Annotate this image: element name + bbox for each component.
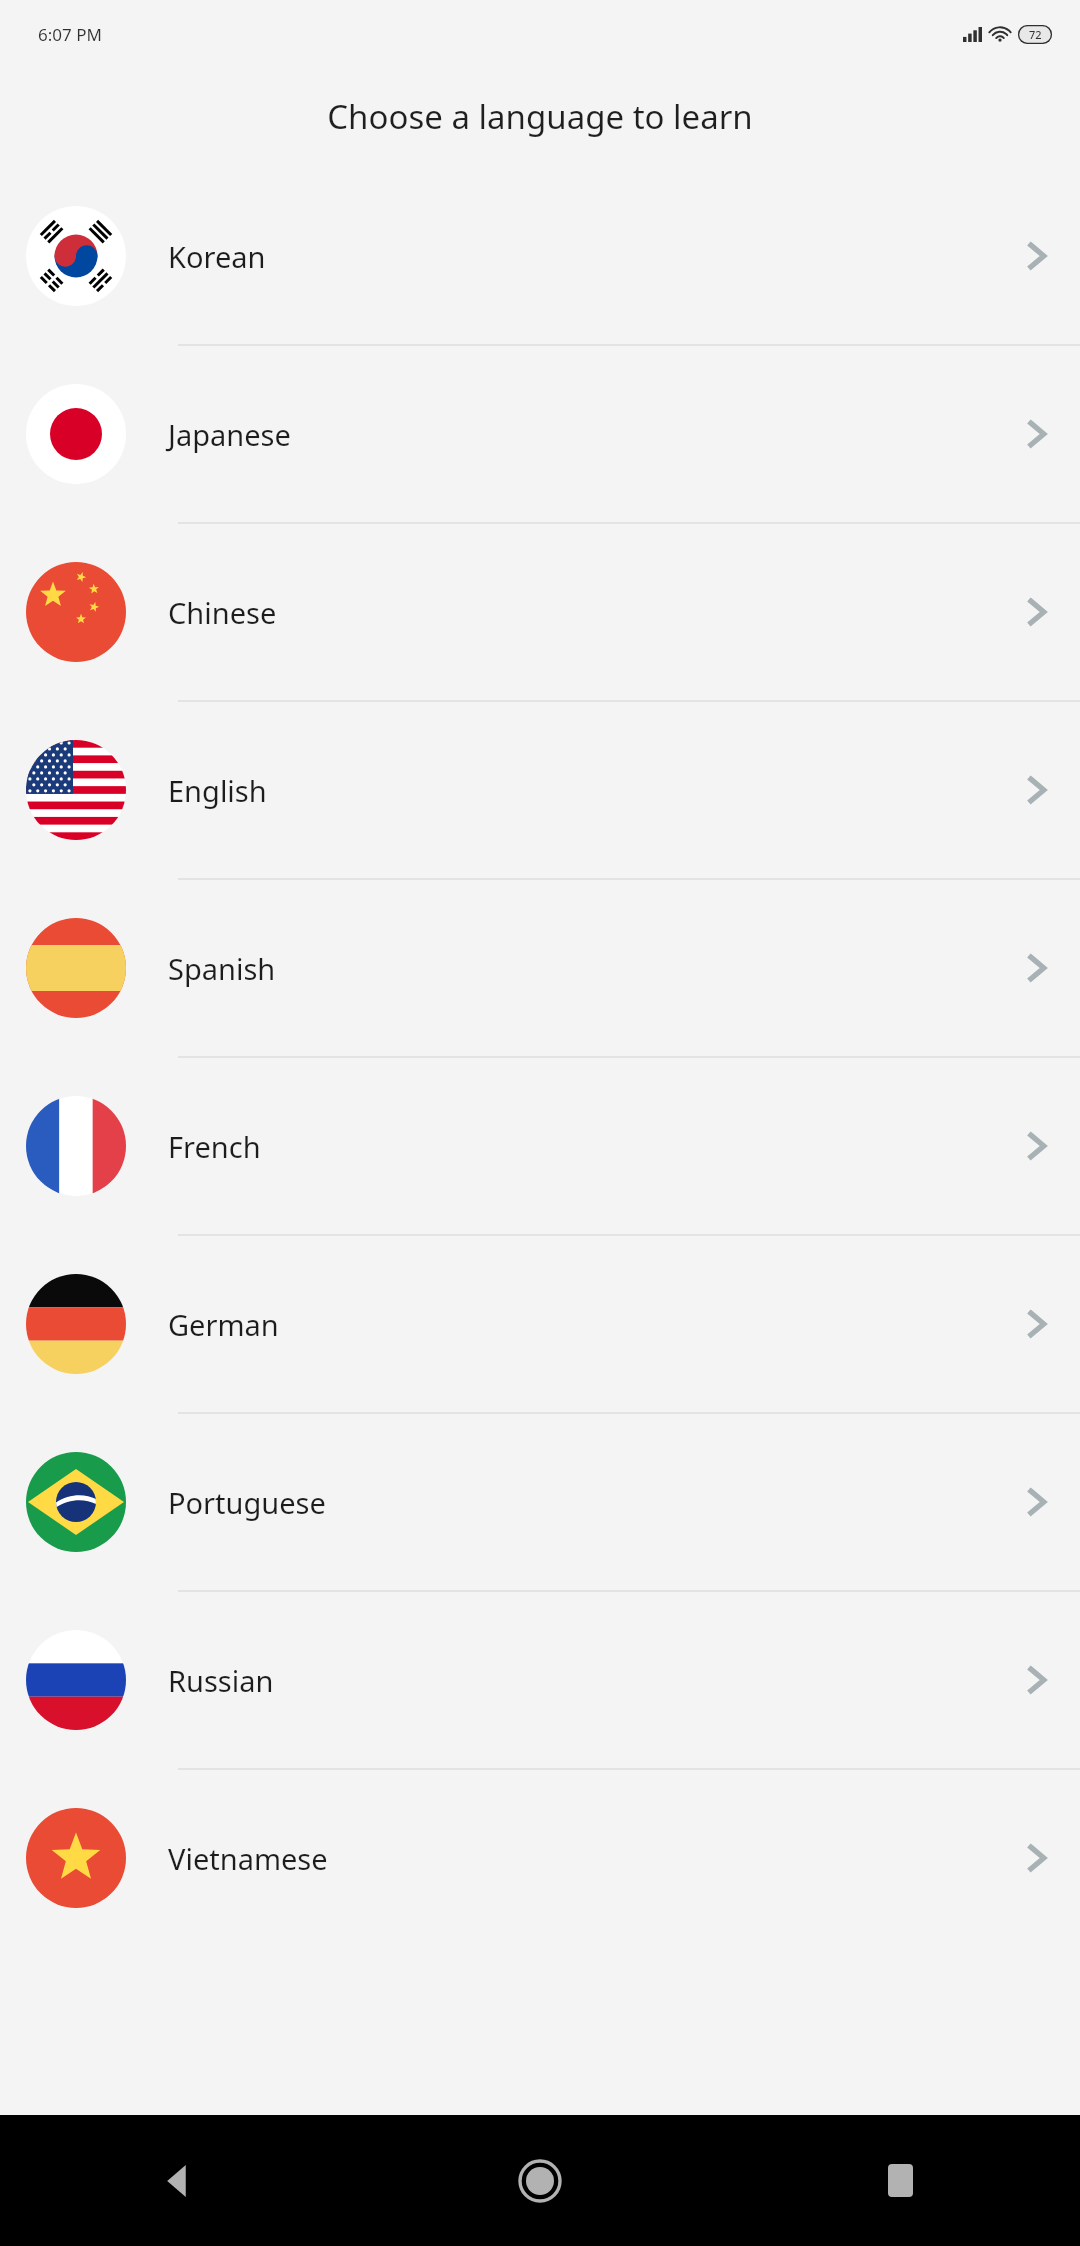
button[interactable]: Spanish	[0, 880, 1080, 1058]
other: Open German	[1020, 1307, 1054, 1341]
button[interactable]: German	[0, 1236, 1080, 1414]
staticText: Choose a language to learn	[0, 94, 1080, 139]
button[interactable]: Vietnamese	[0, 1770, 1080, 1946]
other: Open Spanish	[1020, 951, 1054, 985]
other: Open Japanese	[1020, 417, 1054, 451]
button[interactable]: Portuguese	[0, 1414, 1080, 1592]
other: Open French	[1020, 1129, 1054, 1163]
other: Open Russian	[1020, 1663, 1054, 1697]
other: Open Korean	[1020, 239, 1054, 273]
other: Open English	[1020, 773, 1054, 807]
staticText: French	[168, 1127, 1020, 1166]
button[interactable]: Chinese	[0, 524, 1080, 702]
button[interactable]: Recent apps	[720, 2115, 1080, 2246]
staticText: Japanese	[168, 415, 1020, 454]
button[interactable]: Korean	[0, 168, 1080, 346]
button[interactable]: French	[0, 1058, 1080, 1236]
staticText: 6:07 PM	[38, 23, 102, 46]
staticText: Portuguese	[168, 1483, 1020, 1522]
button[interactable]: Back	[0, 2115, 360, 2246]
staticText: Korean	[168, 237, 1020, 276]
button[interactable]: Home	[360, 2115, 720, 2246]
other: Open Vietnamese	[1020, 1841, 1054, 1875]
staticText: Chinese	[168, 593, 1020, 632]
staticText: English	[168, 771, 1020, 810]
staticText: Vietnamese	[168, 1839, 1020, 1878]
staticText: Russian	[168, 1661, 1020, 1700]
button[interactable]: Japanese	[0, 346, 1080, 524]
staticText: Spanish	[168, 949, 1020, 988]
button[interactable]: English	[0, 702, 1080, 880]
other: Open Chinese	[1020, 595, 1054, 629]
other: Open Portuguese	[1020, 1485, 1054, 1519]
staticText: 72	[1029, 27, 1042, 42]
staticText: German	[168, 1305, 1020, 1344]
button[interactable]: Russian	[0, 1592, 1080, 1770]
